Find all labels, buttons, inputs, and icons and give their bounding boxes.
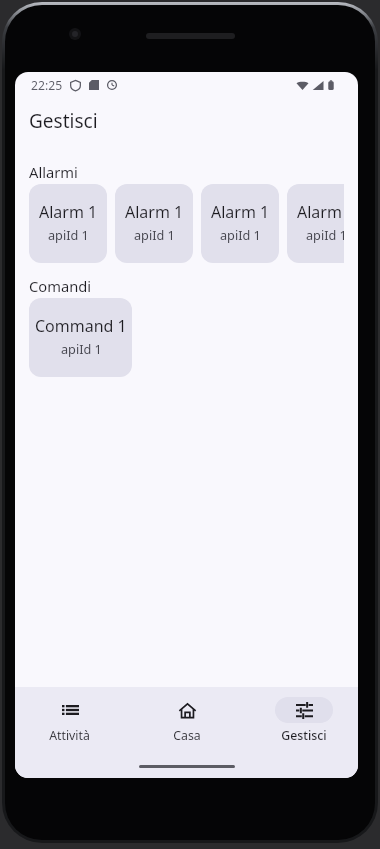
staticText: Attività	[49, 727, 90, 744]
staticText: Allarmi	[29, 162, 78, 182]
staticText: Alarm 1	[211, 201, 270, 223]
staticText: 22:25	[31, 77, 63, 94]
staticText: apiId 1	[306, 226, 344, 243]
other: Casa	[158, 697, 216, 723]
staticText: apiId 1	[220, 226, 261, 243]
staticText: Alarm 1	[39, 201, 98, 223]
staticText: Gestisci	[281, 727, 327, 744]
button[interactable]: Alarm 1	[201, 184, 279, 263]
staticText: Gestisci	[29, 108, 98, 134]
staticText: apiId 1	[134, 226, 175, 243]
staticText: apiId 1	[48, 226, 89, 243]
button[interactable]: Gestisci	[245, 697, 358, 744]
other: Gestisci	[275, 697, 333, 723]
button[interactable]: Casa	[128, 697, 245, 744]
button[interactable]: Alarm 1	[287, 184, 344, 263]
button[interactable]: Command 1	[29, 298, 132, 377]
button[interactable]: Alarm 1	[115, 184, 193, 263]
staticText: Command 1	[35, 315, 127, 337]
button[interactable]: Attività	[15, 697, 128, 744]
other: Attività	[41, 697, 99, 723]
staticText: Alarm 1	[125, 201, 184, 223]
staticText: Casa	[173, 727, 201, 744]
button[interactable]: Alarm 1	[29, 184, 107, 263]
staticText: apiId 1	[61, 340, 102, 357]
staticText: Alarm 1	[297, 201, 344, 223]
staticText: Comandi	[29, 276, 92, 296]
